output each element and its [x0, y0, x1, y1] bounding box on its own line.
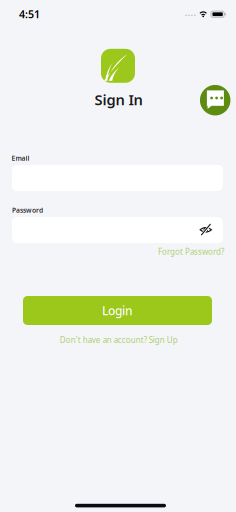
staticText: Email [12, 154, 30, 163]
button[interactable]: Forgot Password? [158, 246, 224, 257]
staticText: Forgot Password? [158, 246, 224, 257]
staticText: Login [102, 302, 133, 318]
staticText: Sign In [94, 90, 142, 109]
button[interactable]: Login [23, 296, 212, 325]
button[interactable]: Don't have an account? Sign Up [60, 335, 178, 345]
staticText: 4:51 [19, 7, 40, 21]
staticText: Don't have an account? Sign Up [60, 335, 178, 345]
button[interactable]: Chat support [200, 85, 230, 115]
staticText: Password [12, 206, 43, 215]
